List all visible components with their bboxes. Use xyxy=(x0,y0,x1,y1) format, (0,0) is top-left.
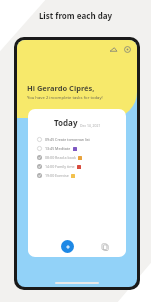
button[interactable]: 08:00 Read a book xyxy=(28,153,126,162)
button[interactable]: 14:00 Family time xyxy=(28,162,126,171)
staticText: Today xyxy=(54,117,78,128)
button[interactable]: 09:45 Create tomorrow list xyxy=(28,135,126,144)
staticText: 09:45 Create tomorrow list xyxy=(45,137,90,142)
button[interactable]: Settings xyxy=(123,45,132,54)
staticText: 14:00 Family time xyxy=(45,164,75,169)
button[interactable]: Cloud xyxy=(109,45,118,54)
staticText: Hi Gerardo Ciprés, xyxy=(27,83,95,93)
staticText: Dec 14, 2021 xyxy=(80,123,101,128)
staticText: You have 2 incomplete tasks for today! xyxy=(27,95,103,101)
staticText: 19:00 Exercise xyxy=(45,173,69,178)
button[interactable]: Add task xyxy=(61,240,74,253)
staticText: 08:00 Read a book xyxy=(45,155,76,160)
button[interactable]: Documents xyxy=(98,240,111,253)
button[interactable]: 13:45 Meditate xyxy=(28,144,126,153)
button[interactable]: 19:00 Exercise xyxy=(28,171,126,180)
staticText: 13:45 Meditate xyxy=(45,146,71,151)
staticText: List from each day xyxy=(0,10,151,21)
